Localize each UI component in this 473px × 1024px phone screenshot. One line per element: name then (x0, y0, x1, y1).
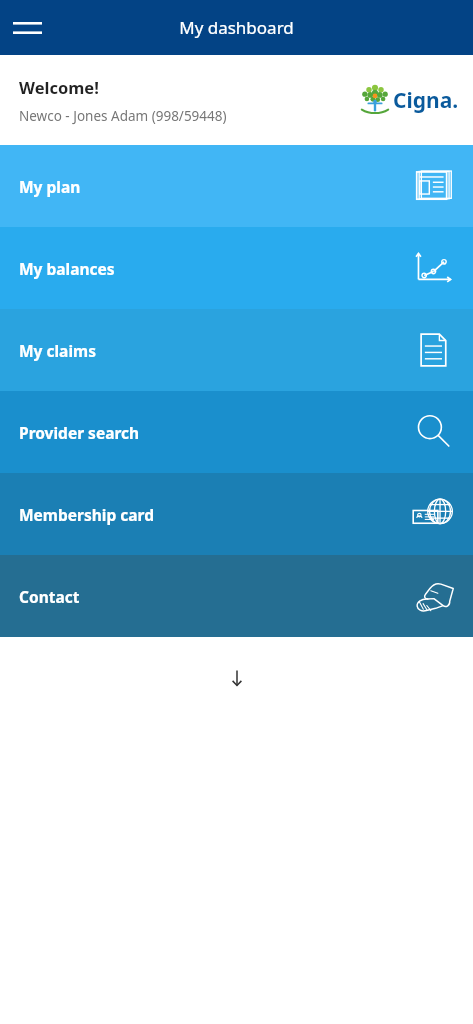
staticText: My balances (19, 258, 115, 279)
staticText: My dashboard (179, 16, 294, 39)
other: Cigna logo (360, 83, 459, 117)
staticText: Contact (19, 586, 80, 607)
button[interactable]: Membership card (0, 473, 473, 555)
button[interactable]: Contact (0, 555, 473, 637)
button[interactable]: My claims (0, 309, 473, 391)
other: Provider search (411, 410, 455, 454)
staticText: Membership card (19, 504, 154, 525)
other: My plan (411, 164, 455, 208)
staticText: Cigna. (393, 86, 459, 115)
staticText: Welcome! (19, 76, 99, 98)
staticText: Provider search (19, 422, 140, 443)
staticText: Newco - Jones Adam (998/59448) (19, 107, 227, 125)
other: My balances (411, 246, 455, 290)
button[interactable]: My plan (0, 145, 473, 227)
other: Contact (411, 574, 455, 618)
staticText: My claims (19, 340, 96, 361)
other: Scroll down (226, 667, 248, 689)
button[interactable]: My balances (0, 227, 473, 309)
staticText: My plan (19, 176, 81, 197)
other: Membership card (411, 492, 455, 536)
button[interactable]: Provider search (0, 391, 473, 473)
other: My claims (411, 328, 455, 372)
button[interactable]: Open navigation menu (4, 5, 50, 51)
